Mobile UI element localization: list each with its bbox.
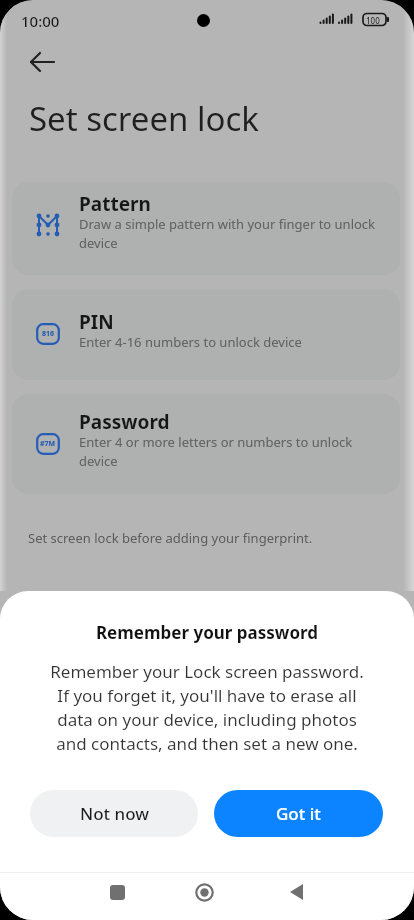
- staticText: Got it: [276, 802, 321, 825]
- staticText: #7M: [40, 439, 56, 449]
- button[interactable]: [101, 876, 133, 908]
- staticText: 100: [366, 15, 380, 26]
- staticText: Set screen lock before adding your finge…: [28, 529, 313, 547]
- staticText: Enter 4 or more letters or numbers to un…: [79, 433, 353, 470]
- staticText: Set screen lock: [29, 96, 259, 141]
- staticText: Pattern: [79, 191, 151, 217]
- button[interactable]: [24, 44, 60, 80]
- button[interactable]: [281, 876, 313, 908]
- staticText: PIN: [79, 309, 114, 335]
- button[interactable]: [188, 876, 220, 908]
- button[interactable]: Pattern: [12, 182, 400, 275]
- staticText: Password: [79, 409, 170, 435]
- staticText: Not now: [80, 802, 149, 825]
- button[interactable]: #7M: [12, 394, 400, 494]
- staticText: Remember your Lock screen password. If y…: [0, 660, 414, 755]
- staticText: Remember your password: [0, 621, 414, 644]
- button[interactable]: Not now: [30, 790, 198, 837]
- button[interactable]: Got it: [214, 790, 383, 837]
- button[interactable]: 816: [12, 289, 400, 380]
- staticText: 816: [42, 329, 55, 339]
- staticText: 10:00: [21, 11, 60, 31]
- staticText: Draw a simple pattern with your finger t…: [79, 215, 376, 252]
- staticText: Enter 4-16 numbers to unlock device: [79, 333, 302, 351]
